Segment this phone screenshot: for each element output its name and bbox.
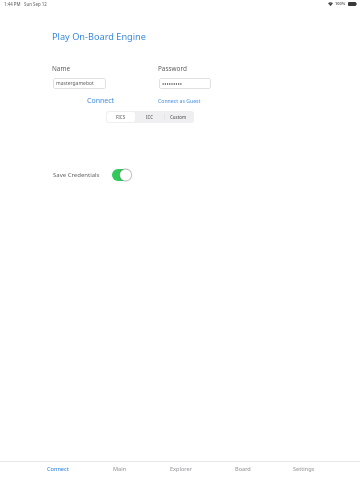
staticText: FICS — [116, 114, 126, 120]
staticText: Sun Sep 12 — [24, 1, 47, 7]
button[interactable]: FICS — [107, 112, 135, 122]
button[interactable]: Board — [212, 462, 273, 480]
staticText: Save Credentials — [53, 171, 100, 179]
button[interactable] — [159, 78, 211, 89]
staticText: Connect as Guest — [158, 97, 201, 104]
button[interactable]: Explorer — [151, 462, 212, 480]
button[interactable]: Custom — [164, 112, 193, 122]
button[interactable]: Connect as Guest — [157, 95, 202, 106]
button[interactable]: Connect — [82, 95, 119, 106]
button[interactable]: Save Credentials toggle, on — [112, 169, 131, 181]
staticText: Board — [235, 465, 251, 473]
staticText: Main — [113, 465, 127, 473]
button[interactable]: Play On-Board Engine — [52, 30, 146, 43]
staticText: Play On-Board Engine — [52, 30, 146, 43]
other: Battery full — [348, 2, 357, 6]
button[interactable]: ICC — [135, 112, 164, 122]
staticText: Password — [158, 64, 187, 73]
staticText: ICC — [146, 114, 154, 120]
staticText: Connect — [87, 96, 115, 106]
staticText: Explorer — [170, 465, 193, 473]
button[interactable]: mastergamebot — [53, 78, 106, 89]
staticText: Custom — [170, 114, 187, 120]
other: Wi-Fi — [328, 2, 333, 6]
staticText: 1:44 PM — [4, 1, 21, 7]
button[interactable]: Main — [89, 462, 151, 480]
staticText: Name — [52, 64, 71, 73]
button[interactable]: Connect — [27, 462, 89, 480]
button[interactable]: Settings — [273, 462, 334, 480]
staticText: Settings — [293, 465, 315, 473]
staticText: 100% — [335, 1, 346, 6]
staticText: mastergamebot — [56, 80, 94, 87]
staticText: Connect — [47, 465, 69, 473]
